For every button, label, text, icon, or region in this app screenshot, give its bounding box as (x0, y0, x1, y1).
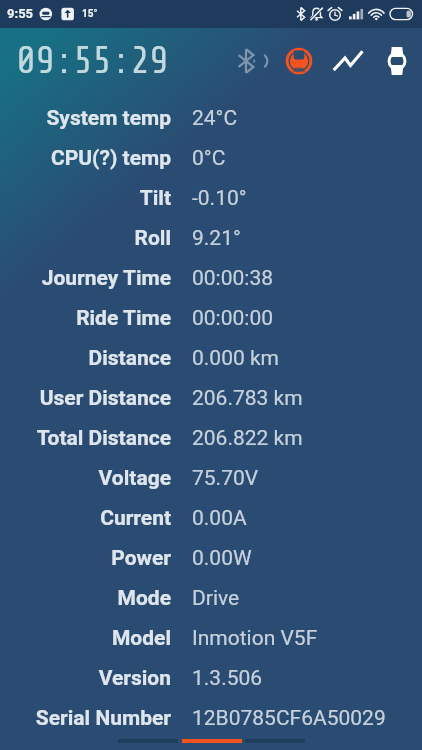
button[interactable]: Total Distance (0, 418, 422, 458)
staticText: 75.70V (192, 466, 259, 491)
button[interactable]: User Distance (0, 378, 422, 418)
staticText: 00:00:38 (192, 266, 273, 291)
button[interactable]: System temp (0, 98, 422, 138)
staticText: Total Distance (36, 426, 171, 451)
staticText: System temp (46, 106, 171, 131)
staticText: Current (100, 506, 171, 531)
button[interactable]: Wheel (277, 39, 321, 83)
staticText: CPU(?) temp (50, 146, 171, 171)
staticText: Voltage (98, 466, 171, 491)
button[interactable]: Chart (326, 39, 370, 83)
staticText: Inmotion V5F (192, 626, 318, 651)
staticText: 12B0785CF6A50029 (192, 706, 386, 731)
staticText: 1.3.506 (192, 666, 263, 691)
button[interactable]: Distance (0, 338, 422, 378)
button[interactable]: Serial Number (0, 698, 422, 738)
button[interactable]: Model (0, 618, 422, 658)
button[interactable]: Current (0, 498, 422, 538)
staticText: Serial Number (35, 706, 171, 731)
staticText: 00:00:00 (192, 306, 273, 331)
button[interactable]: Watch (375, 39, 419, 83)
staticText: 9:55 (7, 6, 34, 21)
staticText: Ride Time (76, 306, 171, 331)
staticText: Drive (192, 586, 240, 611)
staticText: User Distance (39, 386, 171, 411)
staticText: Mode (117, 586, 171, 611)
button[interactable]: Version (0, 658, 422, 698)
staticText: 0.000 km (192, 346, 280, 371)
staticText: 0.00W (192, 546, 252, 571)
staticText: Tilt (139, 186, 171, 211)
staticText: 15° (82, 8, 98, 20)
staticText: 0.00A (192, 506, 247, 531)
button[interactable]: CPU(?) temp (0, 138, 422, 178)
staticText: -0.10° (192, 186, 247, 211)
staticText: 0°C (192, 146, 226, 171)
staticText: Journey Time (41, 266, 171, 291)
staticText: 206.822 km (192, 426, 303, 451)
staticText: 9.21° (192, 226, 241, 251)
button[interactable]: Roll (0, 218, 422, 258)
staticText: Version (98, 666, 171, 691)
staticText: 24°C (192, 106, 238, 131)
staticText: Roll (134, 226, 171, 251)
button[interactable]: Bluetooth connecting (227, 39, 271, 83)
button[interactable]: Tilt (0, 178, 422, 218)
staticText: 09:55:29 (16, 40, 168, 82)
button[interactable]: Journey Time (0, 258, 422, 298)
staticText: Model (111, 626, 171, 651)
staticText: Power (111, 546, 171, 571)
staticText: 206.783 km (192, 386, 303, 411)
button[interactable]: Power (0, 538, 422, 578)
staticText: Distance (88, 346, 171, 371)
button[interactable]: Mode (0, 578, 422, 618)
button[interactable]: Voltage (0, 458, 422, 498)
button[interactable]: Ride Time (0, 298, 422, 338)
